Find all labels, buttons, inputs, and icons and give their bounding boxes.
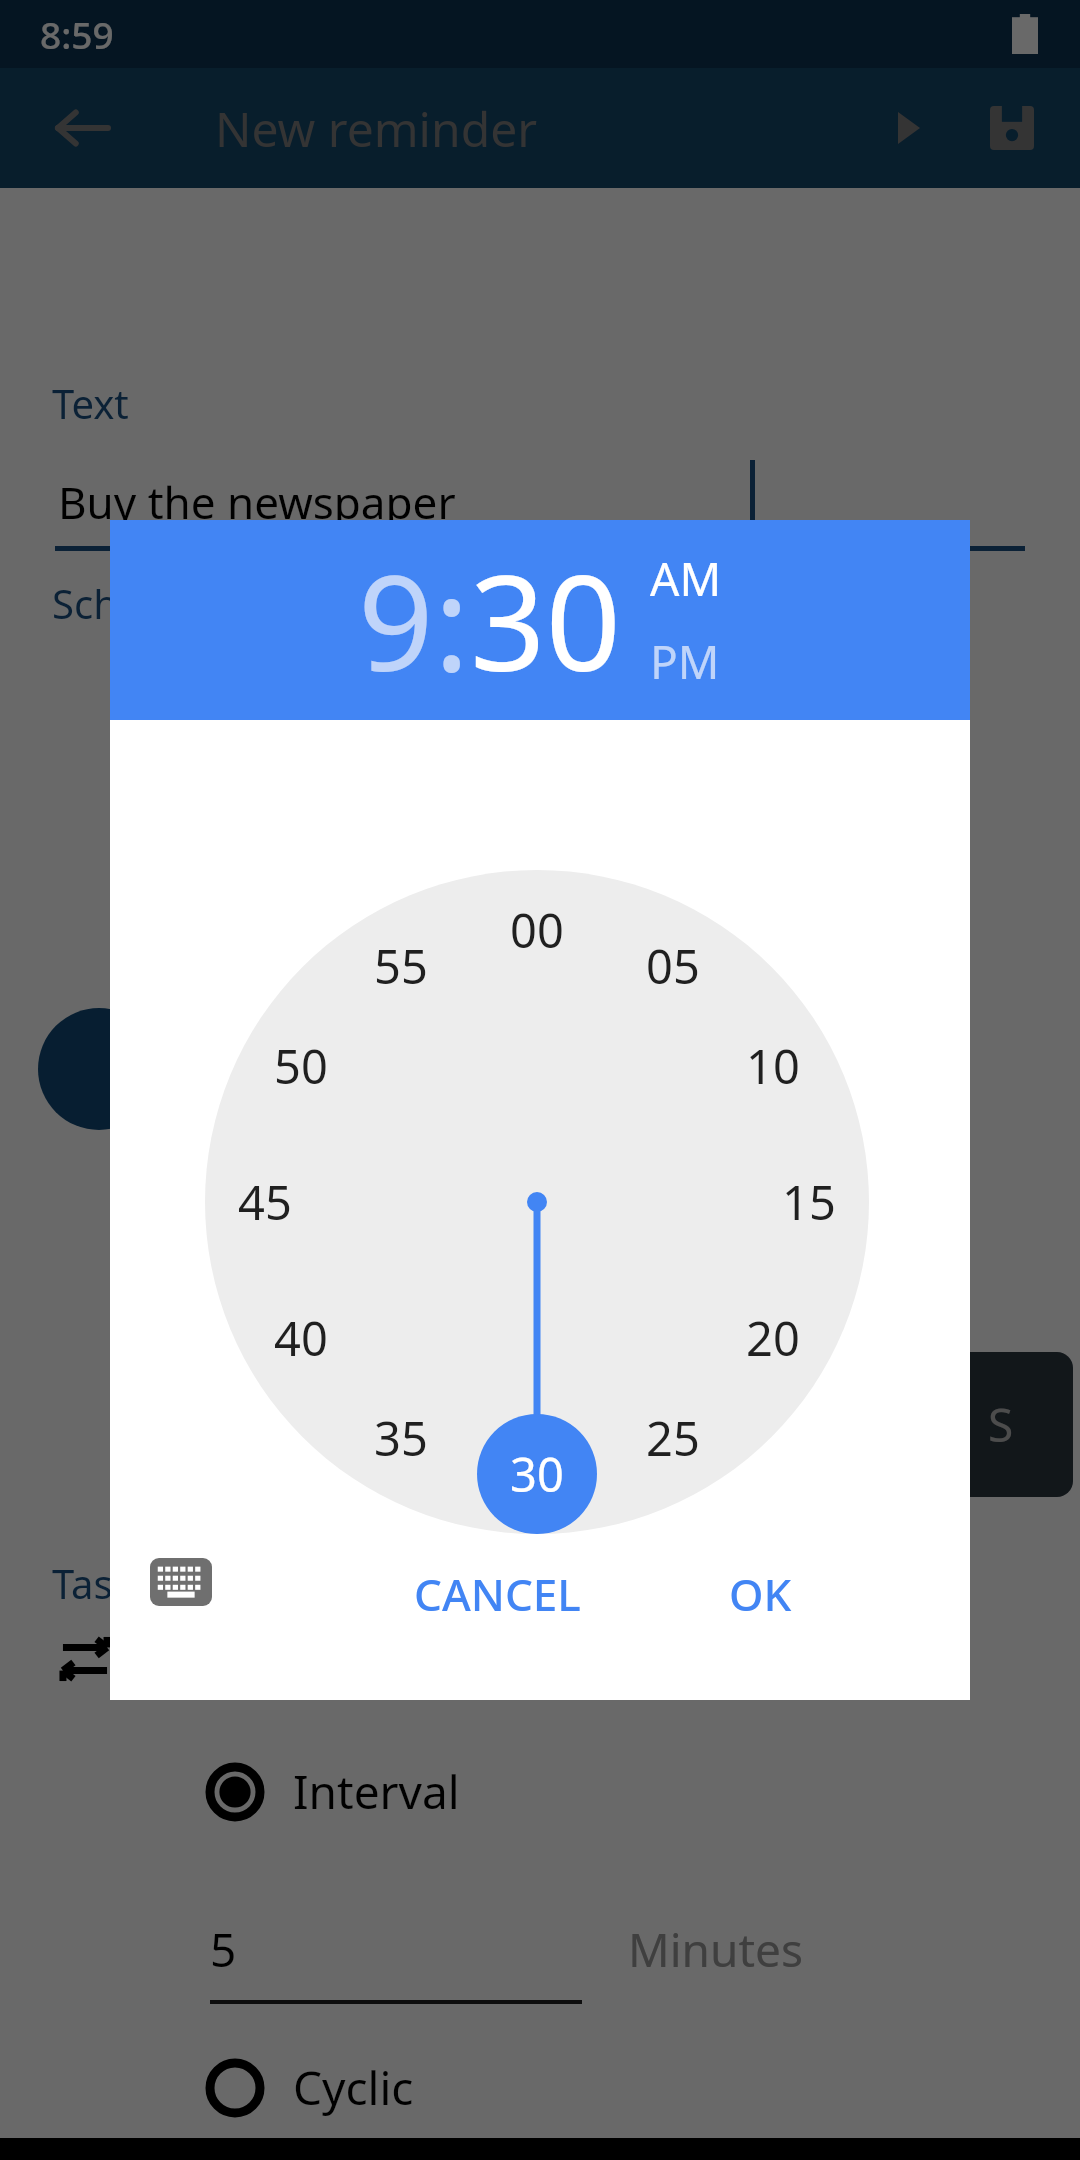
- button[interactable]: PM: [650, 630, 720, 693]
- staticText: 10: [746, 1034, 800, 1098]
- other: Repeat: [56, 1630, 114, 1688]
- button[interactable]: Cyclic: [205, 2056, 414, 2119]
- staticText: 5: [210, 1918, 237, 1981]
- staticText: 40: [274, 1306, 328, 1370]
- staticText: CANCEL: [414, 1564, 581, 1624]
- button[interactable]: 30: [470, 530, 622, 710]
- button[interactable]: 00: [205, 870, 869, 1534]
- staticText: :: [434, 530, 470, 710]
- staticText: Tas: [52, 1556, 113, 1610]
- staticText: Text: [52, 376, 129, 430]
- button[interactable]: CANCEL: [390, 1542, 605, 1646]
- button[interactable]: AM: [650, 547, 722, 610]
- staticText: S: [988, 1393, 1014, 1456]
- staticText: Interval: [293, 1760, 460, 1823]
- staticText: 30: [510, 1442, 564, 1506]
- button[interactable]: Interval: [205, 1760, 460, 1823]
- button[interactable]: Preview: [888, 108, 928, 148]
- staticText: 00: [510, 898, 564, 962]
- staticText: OK: [729, 1564, 792, 1624]
- staticText: 50: [274, 1034, 328, 1098]
- button[interactable]: S: [928, 1352, 1073, 1497]
- button[interactable]: 9: [358, 530, 434, 710]
- staticText: 05: [646, 934, 700, 998]
- staticText: 35: [374, 1406, 428, 1470]
- staticText: Sch: [52, 576, 118, 630]
- staticText: 55: [374, 934, 428, 998]
- staticText: Cyclic: [293, 2056, 414, 2119]
- staticText: Minutes: [628, 1918, 804, 1981]
- button[interactable]: Back: [56, 102, 108, 154]
- other: Battery: [1012, 14, 1038, 54]
- staticText: 8:59: [40, 9, 114, 59]
- button[interactable]: Action: [38, 1008, 160, 1130]
- staticText: 15: [782, 1170, 836, 1234]
- staticText: 20: [746, 1306, 800, 1370]
- staticText: 45: [238, 1170, 292, 1234]
- staticText: Buy the newspaper: [58, 472, 456, 532]
- staticText: 25: [646, 1406, 700, 1470]
- button[interactable]: Switch to text input: [150, 1558, 212, 1606]
- button[interactable]: Save: [990, 106, 1034, 150]
- button[interactable]: OK: [705, 1542, 816, 1646]
- staticText: New reminder: [215, 96, 538, 161]
